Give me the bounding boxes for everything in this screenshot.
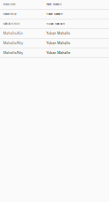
staticText: Yukarı Mahalle [46, 51, 70, 55]
staticText: Mahalle/Köy [3, 32, 23, 35]
staticText: Yukarı Mahalle [46, 32, 70, 35]
staticText: Yukarı Mahalle [46, 22, 65, 25]
staticText: Mahalle/Köy [3, 41, 23, 45]
staticText: Mahalle/Köy [3, 3, 15, 6]
staticText: Yukarı Mahalle [46, 3, 61, 6]
staticText: Mahalle/Köy [3, 22, 19, 25]
staticText: Yukarı Mahalle [46, 13, 62, 16]
staticText: Yukarı Mahalle [46, 41, 70, 45]
staticText: Mahalle/Köy [3, 13, 16, 16]
staticText: Mahalle/Köy [3, 51, 23, 55]
